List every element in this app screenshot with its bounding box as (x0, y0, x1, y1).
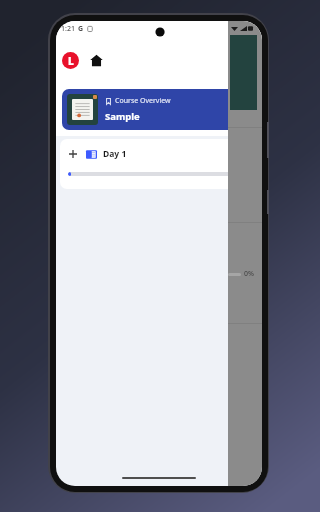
button[interactable]: Logo (62, 52, 79, 69)
button[interactable]: Home (87, 51, 105, 69)
staticText: Sample (105, 110, 140, 123)
staticText: G (78, 24, 84, 34)
staticText: L (68, 54, 74, 68)
staticText: 1:21 (61, 24, 75, 34)
staticText: Course Overview (115, 96, 171, 106)
button[interactable]: Course Overview (62, 89, 256, 130)
button[interactable]: Expand (68, 149, 78, 159)
button[interactable]: Expand (60, 139, 258, 189)
staticText: Day 1 (103, 148, 127, 160)
staticText: 0% (244, 269, 254, 279)
